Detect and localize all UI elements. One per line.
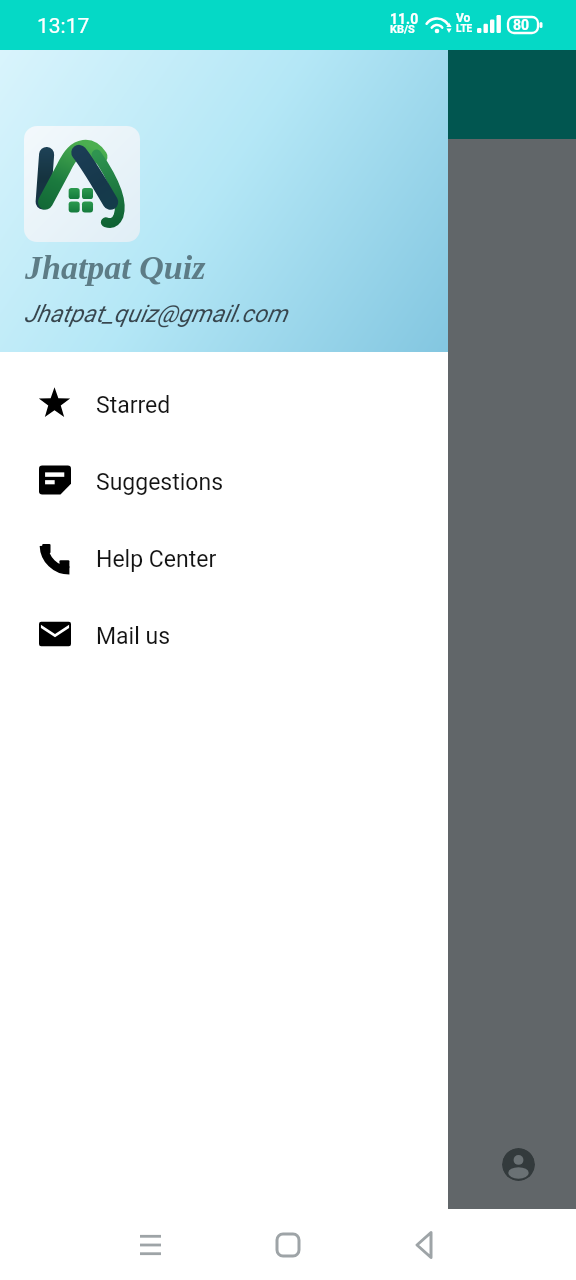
- button[interactable]: Back: [384, 1209, 464, 1280]
- staticText: Vo: [456, 11, 471, 25]
- staticText: 13:17: [37, 14, 90, 39]
- staticText: Suggestions: [96, 469, 224, 496]
- staticText: Jhatpat Quiz: [25, 249, 206, 287]
- button[interactable]: Account: [502, 1148, 535, 1181]
- button[interactable]: Suggestions: [0, 441, 448, 518]
- button[interactable]: Recent apps: [110, 1209, 190, 1280]
- staticText: 11.0: [390, 11, 419, 27]
- button[interactable]: Home: [248, 1209, 328, 1280]
- staticText: Jhatpat_quiz@gmail.com: [24, 300, 288, 328]
- button[interactable]: Starred: [0, 364, 448, 441]
- staticText: KB/S: [390, 23, 415, 36]
- staticText: Mail us: [96, 623, 171, 650]
- staticText: LTE: [456, 23, 473, 35]
- staticText: Help Center: [96, 546, 217, 573]
- button[interactable]: Help Center: [0, 518, 448, 595]
- button[interactable]: Mail us: [0, 595, 448, 672]
- staticText: Starred: [96, 392, 171, 419]
- staticText: 80: [513, 17, 530, 33]
